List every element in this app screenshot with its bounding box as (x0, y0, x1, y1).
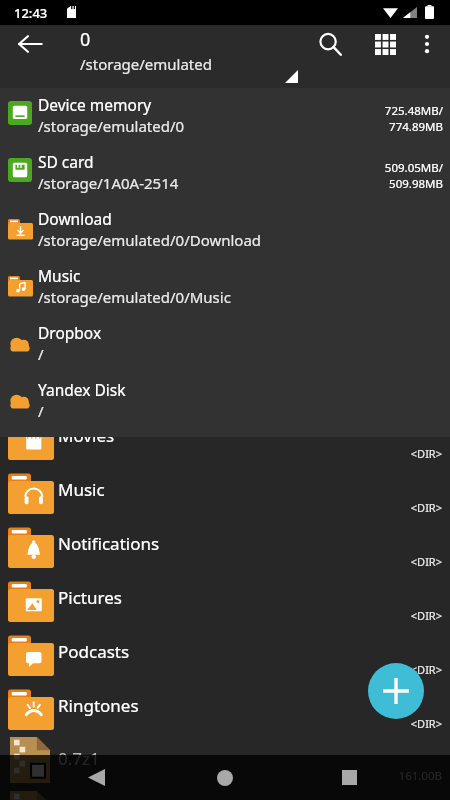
staticText: Notifications (58, 532, 160, 555)
staticText: Dropbox (38, 322, 102, 343)
staticText: <DIR> (0, 554, 442, 569)
staticText: /storage/emulated/0 (38, 116, 185, 136)
button[interactable]: More options (403, 20, 450, 68)
button[interactable]: Movies (0, 410, 450, 464)
staticText: <DIR> (0, 608, 442, 623)
staticText: SD card (38, 151, 94, 172)
button[interactable]: Music (0, 464, 450, 518)
staticText: Music (38, 265, 81, 286)
staticText: <DIR> (0, 500, 442, 515)
staticText: 12:43 (14, 4, 48, 22)
staticText: Ringtones (58, 694, 139, 717)
staticText: / (38, 344, 44, 364)
button[interactable]: Recent apps (325, 755, 373, 800)
staticText: Podcasts (58, 640, 130, 663)
staticText: 0.7z1 (58, 747, 100, 770)
button[interactable]: SD card (0, 145, 450, 202)
button[interactable]: Home (201, 755, 249, 800)
staticText: Music (58, 478, 105, 501)
button[interactable]: Add (368, 663, 424, 719)
button[interactable]: Back (72, 755, 120, 800)
button[interactable]: Pictures (0, 572, 450, 626)
button[interactable]: View mode (361, 20, 409, 68)
staticText: /storage/1A0A-2514 (38, 173, 179, 193)
button[interactable]: Device memory (0, 88, 450, 145)
button[interactable]: Navigate up (2, 16, 58, 72)
staticText: 509.98MB (0, 176, 443, 192)
staticText: /storage/emulated (80, 54, 212, 74)
button[interactable]: Notifications (0, 518, 450, 572)
staticText: 0 (80, 27, 91, 52)
staticText: 509.05MB/ (0, 160, 443, 176)
button[interactable]: Podcasts (0, 626, 450, 680)
staticText: Movies (58, 424, 115, 447)
staticText: /storage/emulated/0/Download (38, 230, 262, 250)
staticText: Pictures (58, 586, 122, 609)
button[interactable]: Yandex Disk (0, 373, 450, 430)
button[interactable]: Dropbox (0, 316, 450, 373)
staticText: /storage/emulated/0/Music (38, 287, 231, 307)
staticText: <DIR> (0, 446, 442, 461)
button[interactable] (0, 788, 450, 800)
button[interactable]: 0.7z1 (0, 734, 450, 788)
button[interactable]: Search (306, 20, 354, 68)
button[interactable]: Music (0, 259, 450, 316)
staticText: Download (38, 208, 112, 229)
staticText: / (38, 401, 44, 421)
staticText: Yandex Disk (38, 379, 126, 400)
staticText: 725.48MB/ (0, 103, 443, 119)
staticText: Device memory (38, 94, 152, 115)
button[interactable]: 0 (80, 27, 290, 74)
staticText: 774.89MB (0, 119, 443, 135)
staticText: <DIR> (0, 662, 442, 677)
button[interactable]: Ringtones (0, 680, 450, 734)
button[interactable]: Download (0, 202, 450, 259)
staticText: 161.00B (0, 768, 442, 784)
staticText: <DIR> (0, 716, 442, 731)
